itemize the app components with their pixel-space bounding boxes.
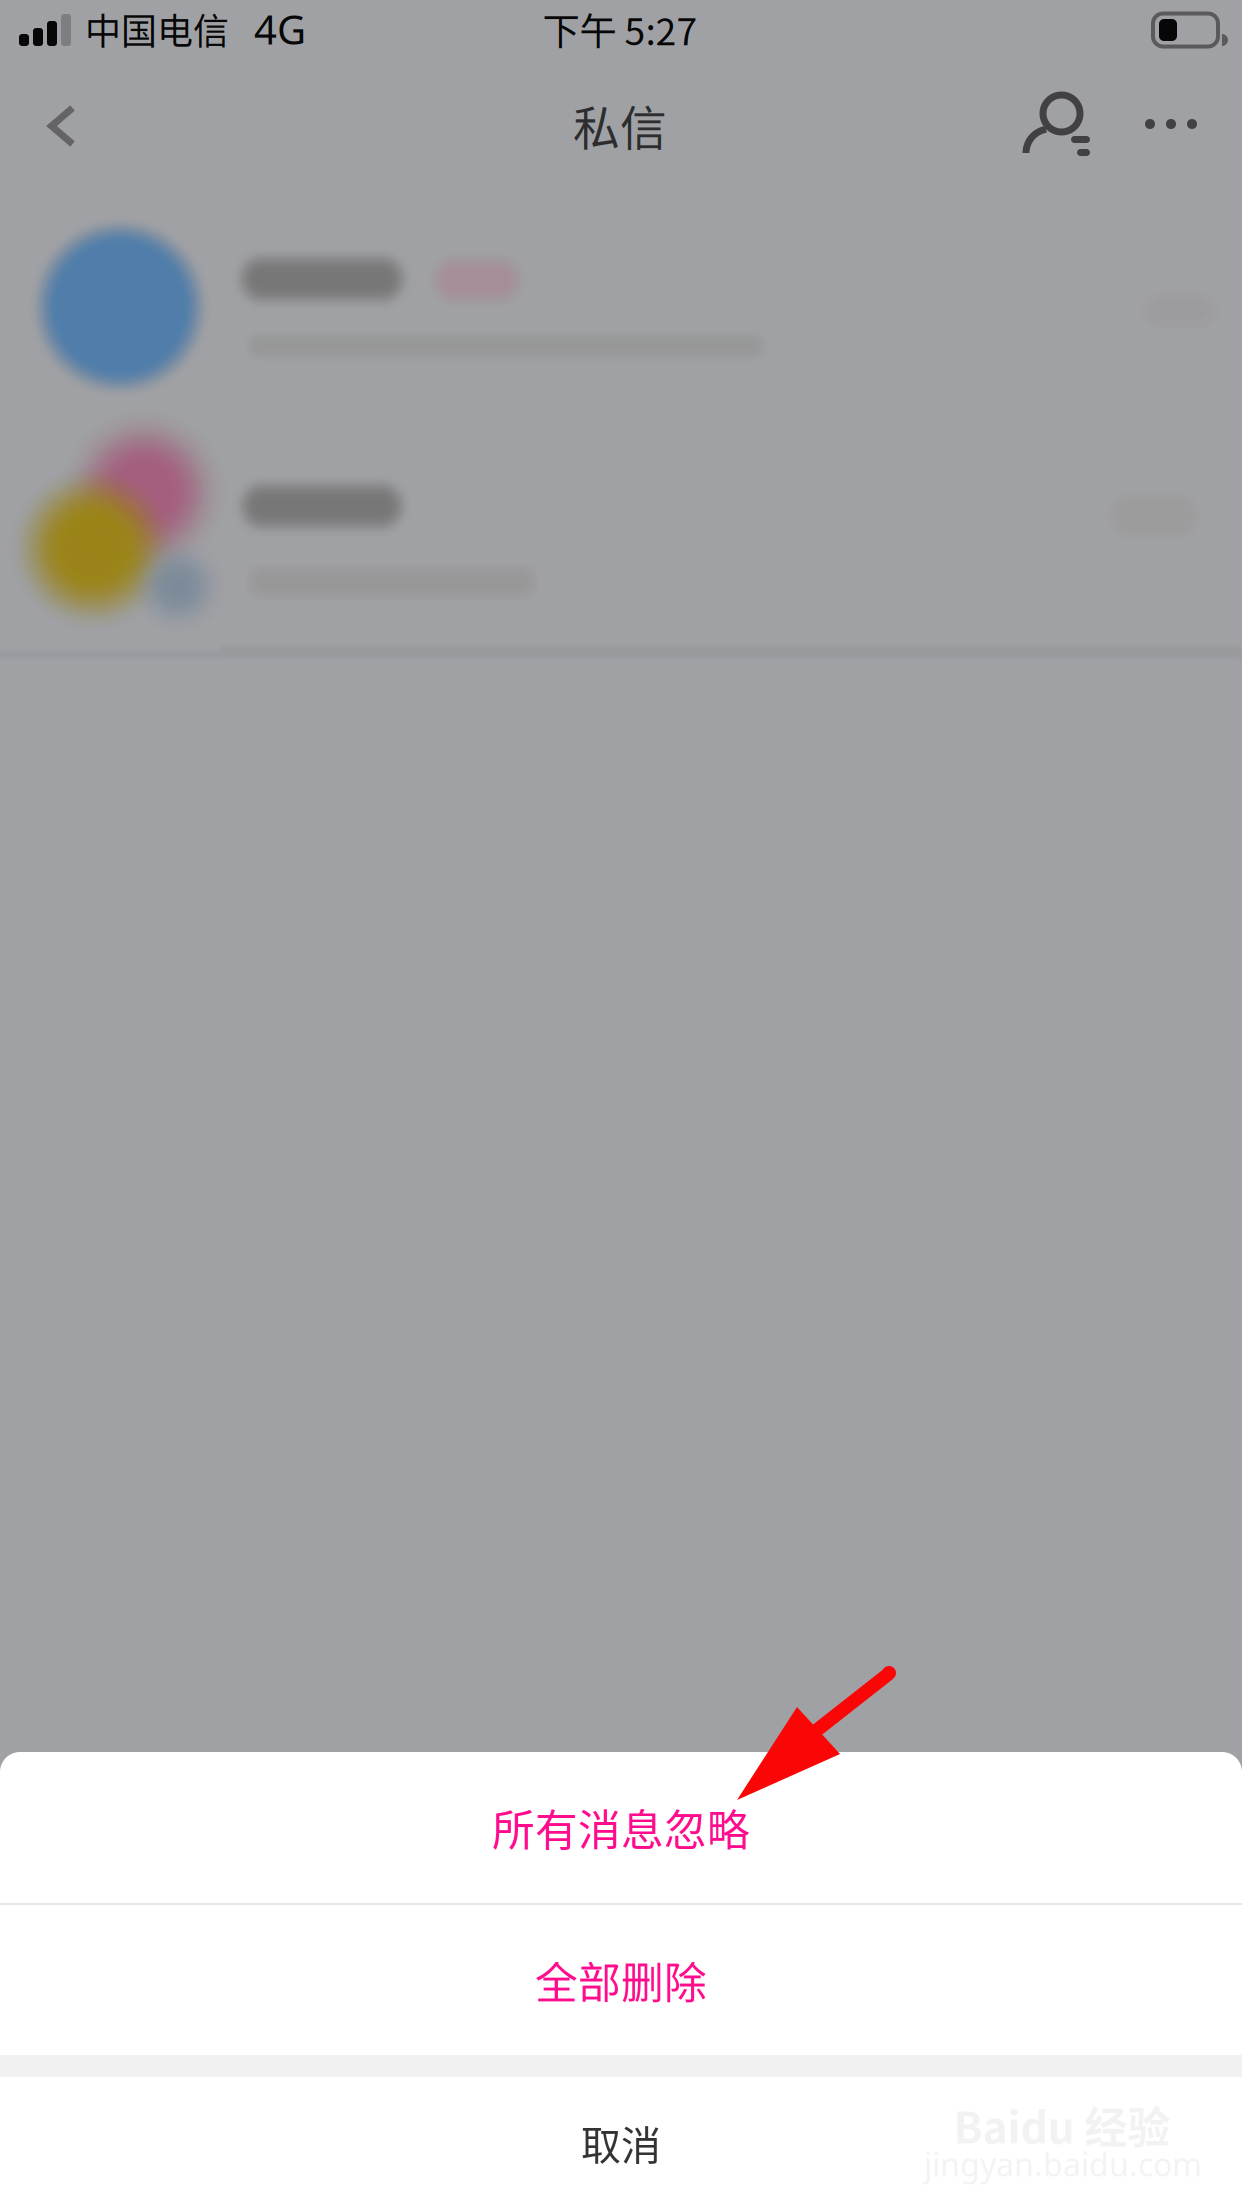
button[interactable]: 更多 bbox=[1121, 64, 1221, 184]
button[interactable]: 发起聊天 bbox=[1006, 66, 1110, 186]
staticText: 全部删除 bbox=[535, 1949, 707, 2011]
button[interactable]: 取消 bbox=[0, 2077, 1242, 2208]
staticText: 4G bbox=[254, 2, 306, 55]
staticText: Baidu 经验 bbox=[953, 2094, 1170, 2156]
staticText: 所有消息忽略 bbox=[492, 1797, 750, 1858]
staticText: 下午 5:27 bbox=[542, 2, 697, 56]
staticText: jingyan.baidu.com bbox=[924, 2143, 1202, 2185]
button[interactable]: 所有消息忽略 bbox=[0, 1752, 1242, 1903]
staticText: 取消 bbox=[581, 2113, 661, 2171]
button[interactable]: 全部删除 bbox=[0, 1905, 1242, 2055]
button[interactable]: 返回 bbox=[7, 66, 117, 186]
staticText: 私信 bbox=[573, 91, 667, 159]
staticText: 中国电信 bbox=[85, 3, 229, 55]
